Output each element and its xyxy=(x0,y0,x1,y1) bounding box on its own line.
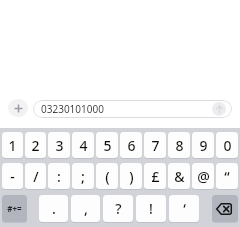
button[interactable]: 6 xyxy=(120,132,142,158)
button[interactable]: 03230101000 xyxy=(33,100,232,118)
button[interactable]: - xyxy=(2,163,23,189)
staticText: ; xyxy=(81,167,85,186)
staticText: . xyxy=(52,199,56,218)
staticText: 5 xyxy=(103,136,112,155)
staticText: @ xyxy=(197,167,210,186)
button[interactable]: Send xyxy=(212,102,226,116)
button[interactable]: . xyxy=(39,195,68,222)
staticText: 3 xyxy=(55,136,64,155)
staticText: 8 xyxy=(175,136,184,155)
staticText: : xyxy=(57,167,61,186)
staticText: 0 xyxy=(223,136,232,155)
button[interactable]: 5 xyxy=(96,132,118,158)
staticText: ! xyxy=(149,199,153,218)
button[interactable]: #+= xyxy=(2,195,27,222)
button[interactable]: & xyxy=(168,163,190,189)
button[interactable]: 1 xyxy=(2,132,23,158)
staticText: - xyxy=(10,167,15,186)
staticText: & xyxy=(174,167,185,186)
staticText: “ xyxy=(224,167,230,186)
staticText: ‘ xyxy=(183,199,186,218)
staticText: / xyxy=(33,167,39,186)
button[interactable]: ; xyxy=(72,163,94,189)
staticText: 03230101000 xyxy=(41,102,104,116)
button[interactable]: ‘ xyxy=(169,195,199,222)
staticText: 1 xyxy=(8,136,17,155)
staticText: ? xyxy=(115,199,122,218)
button[interactable]: / xyxy=(25,163,46,189)
button[interactable]: Delete xyxy=(212,195,238,222)
staticText: ( xyxy=(105,167,110,186)
button[interactable]: £ xyxy=(144,163,166,189)
button[interactable]: ( xyxy=(96,163,118,189)
button[interactable]: ! xyxy=(136,195,166,222)
button[interactable]: 3 xyxy=(48,132,70,158)
staticText: ) xyxy=(129,167,134,186)
button[interactable]: Add attachment xyxy=(8,99,28,117)
button[interactable]: 7 xyxy=(144,132,166,158)
button[interactable]: 8 xyxy=(168,132,190,158)
button[interactable]: ) xyxy=(120,163,142,189)
button[interactable]: “ xyxy=(216,163,238,189)
button[interactable]: @ xyxy=(192,163,214,189)
staticText: 7 xyxy=(151,136,160,155)
button[interactable]: 9 xyxy=(192,132,214,158)
button[interactable]: : xyxy=(48,163,70,189)
staticText: 4 xyxy=(79,136,88,155)
button[interactable]: 0 xyxy=(216,132,238,158)
staticText: , xyxy=(84,199,88,218)
button[interactable]: 4 xyxy=(72,132,94,158)
staticText: 6 xyxy=(127,136,136,155)
button[interactable]: 2 xyxy=(25,132,46,158)
staticText: #+= xyxy=(7,203,22,214)
staticText: 9 xyxy=(199,136,208,155)
staticText: £ xyxy=(151,167,160,186)
button[interactable]: ? xyxy=(103,195,133,222)
staticText: 2 xyxy=(31,136,40,155)
button[interactable]: , xyxy=(71,195,100,222)
